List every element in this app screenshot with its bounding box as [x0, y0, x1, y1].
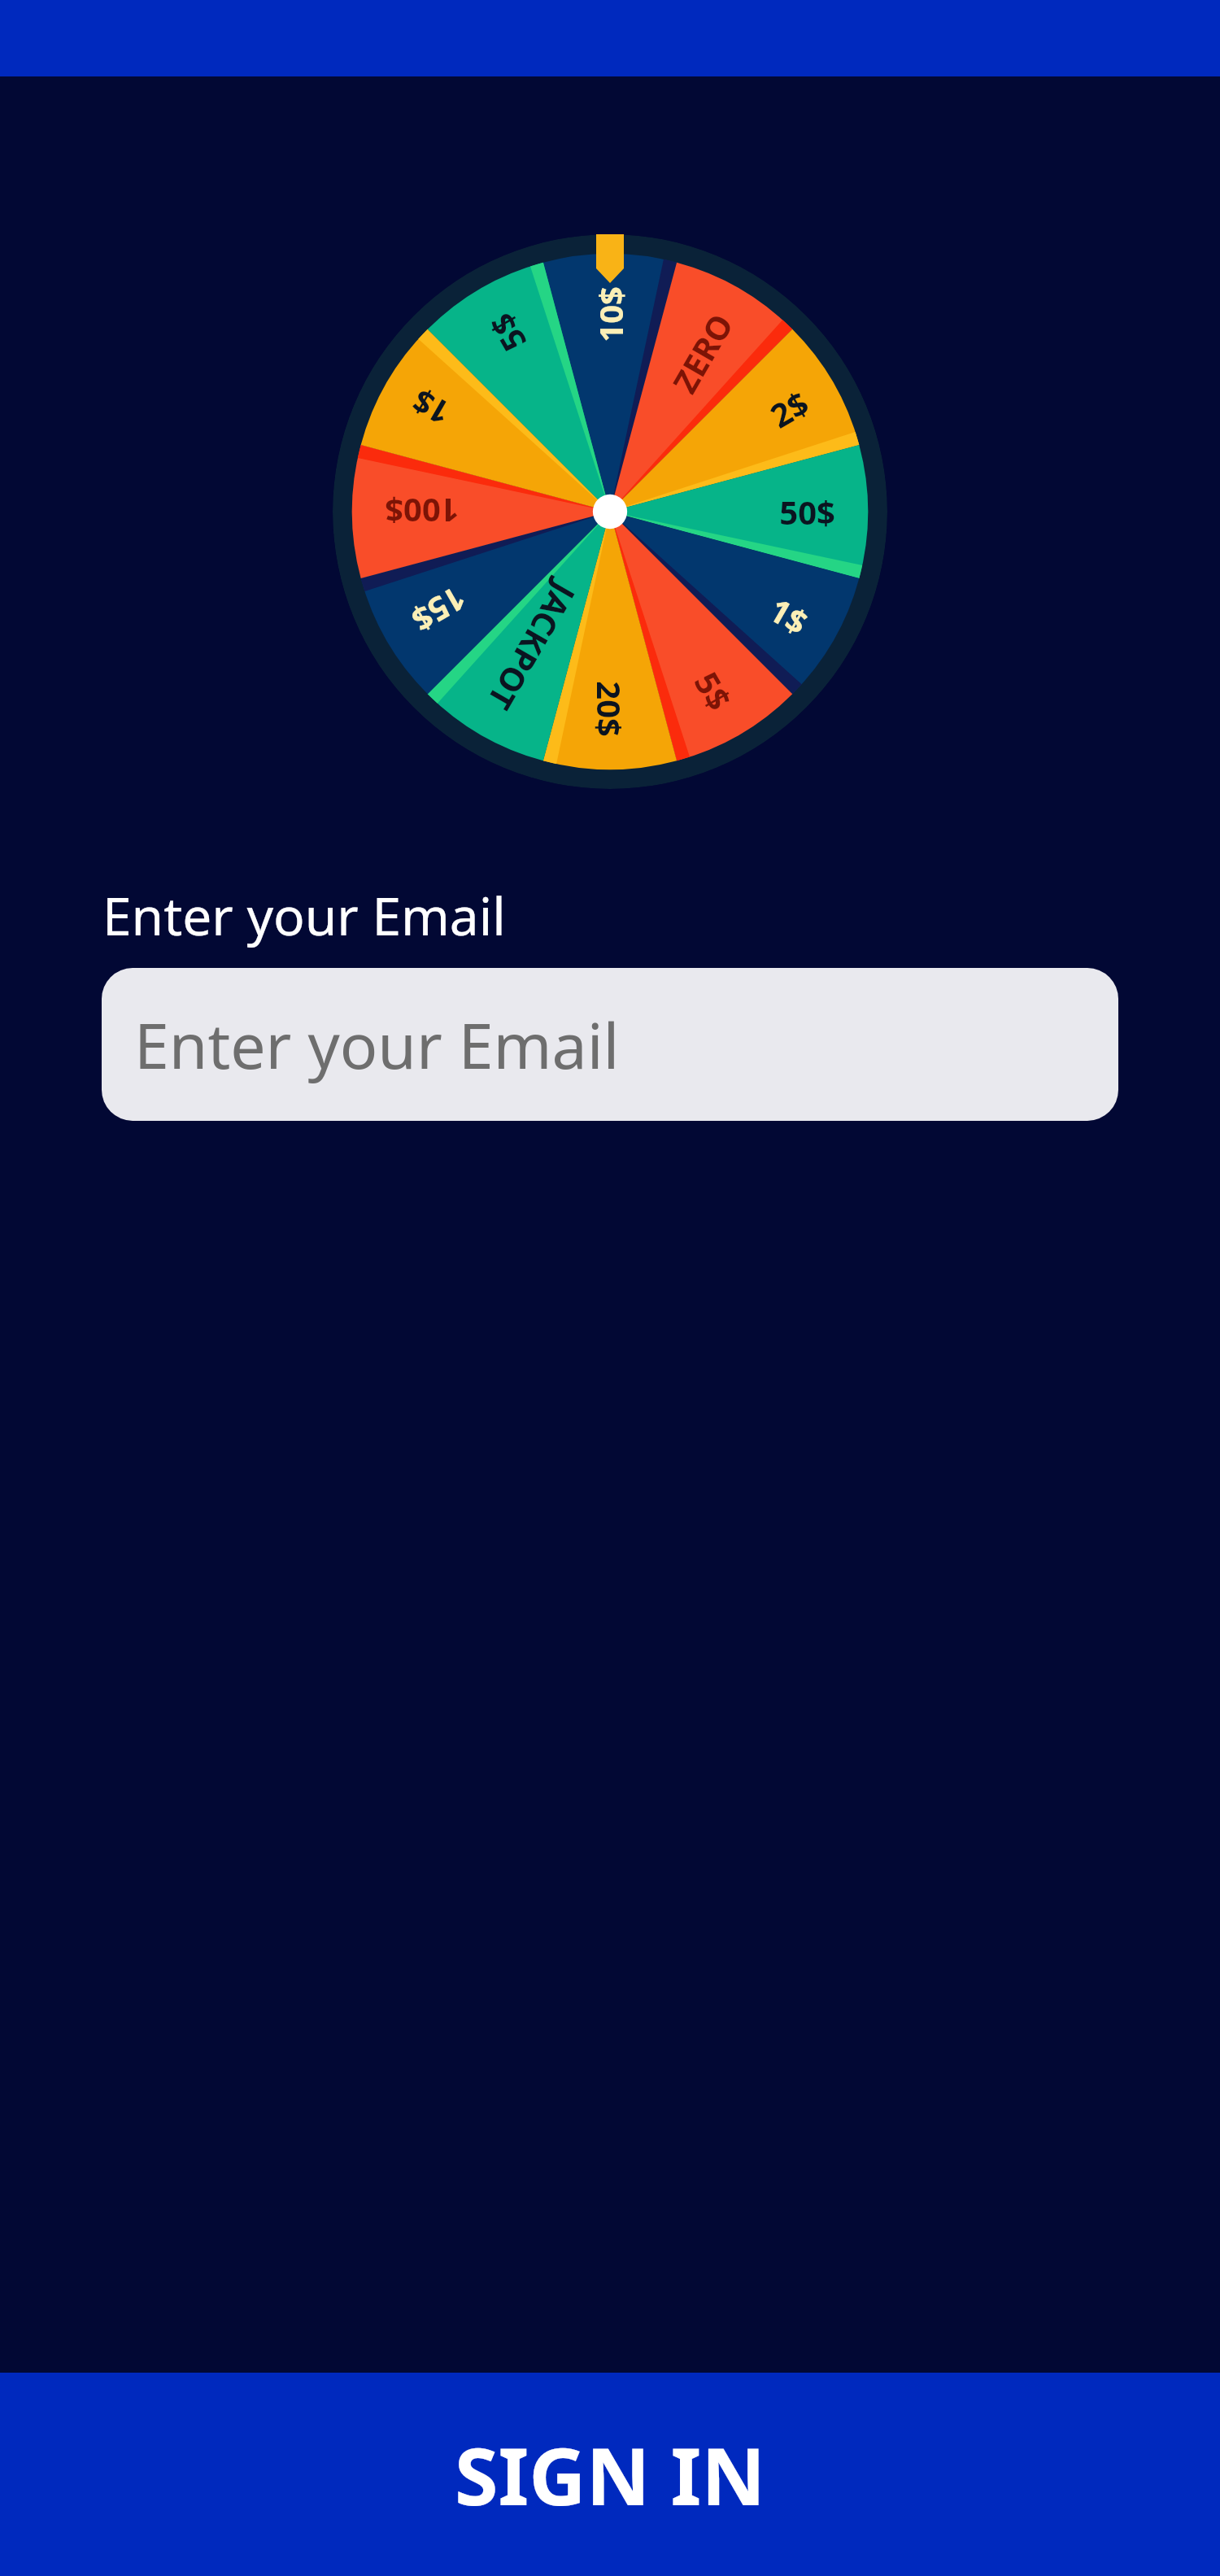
staticText: 15$: [404, 577, 474, 643]
staticText: 5$: [685, 663, 742, 718]
staticText: 1$: [762, 587, 816, 644]
button[interactable]: Enter your Email: [102, 968, 1118, 1121]
staticText: Enter your Email: [134, 1002, 620, 1087]
staticText: Enter your Email: [102, 880, 506, 951]
staticText: 100$: [385, 490, 460, 534]
button[interactable]: SIGN IN: [0, 2373, 1220, 2576]
staticText: ZERO: [662, 306, 742, 401]
staticText: 1$: [404, 380, 458, 436]
staticText: 2$: [762, 380, 816, 437]
staticText: 5$: [479, 306, 535, 360]
staticText: JACKPOT: [479, 575, 586, 718]
staticText: 10$: [588, 286, 632, 342]
staticText: 50$: [779, 490, 835, 534]
button[interactable]: Spin the prize wheel: [333, 234, 887, 789]
staticText: SIGN IN: [455, 2421, 766, 2528]
staticText: 20$: [588, 681, 632, 737]
